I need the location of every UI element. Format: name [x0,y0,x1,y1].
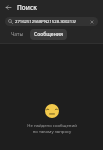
staticText: Сообщения [34,31,63,38]
button[interactable]: Назад [2,1,15,14]
button[interactable]: Чаты [8,29,27,40]
staticText: 27162512568PN21528.300213/ [15,19,88,25]
button[interactable]: 27162512568PN21528.300213/ [5,17,98,26]
staticText: Не найдено сообщений по такому запросу [27,122,77,134]
button[interactable]: Сообщения [30,29,67,40]
staticText: Поиск [17,3,37,12]
staticText: Чаты [11,31,24,38]
button[interactable]: Очистить [89,19,95,25]
